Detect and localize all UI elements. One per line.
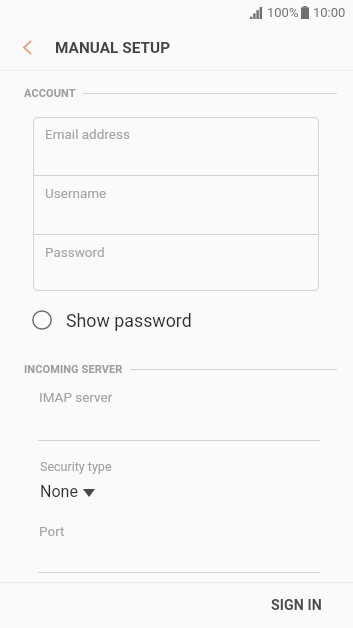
- button[interactable]: Port: [0, 514, 353, 574]
- staticText: Password: [45, 244, 105, 260]
- button[interactable]: IMAP server: [0, 380, 353, 442]
- staticText: IMAP server: [39, 389, 113, 405]
- staticText: None: [40, 482, 78, 501]
- staticText: SIGN IN: [271, 597, 322, 614]
- staticText: Security type: [40, 459, 112, 474]
- button[interactable]: Email address: [33, 117, 319, 175]
- button[interactable]: Username: [33, 176, 319, 234]
- staticText: Username: [45, 185, 107, 201]
- staticText: 100%: [267, 5, 299, 20]
- staticText: ACCOUNT: [24, 87, 76, 99]
- staticText: 10:00: [313, 5, 346, 20]
- button[interactable]: Show password: [0, 301, 353, 339]
- staticText: MANUAL SETUP: [55, 39, 171, 57]
- staticText: Email address: [45, 126, 130, 142]
- staticText: INCOMING SERVER: [24, 363, 123, 375]
- button[interactable]: Back: [0, 24, 50, 70]
- staticText: Show password: [66, 310, 192, 331]
- button[interactable]: Password: [33, 235, 319, 291]
- staticText: Port: [39, 523, 65, 539]
- button[interactable]: Security type: [40, 459, 112, 501]
- button[interactable]: SIGN IN: [260, 588, 333, 623]
